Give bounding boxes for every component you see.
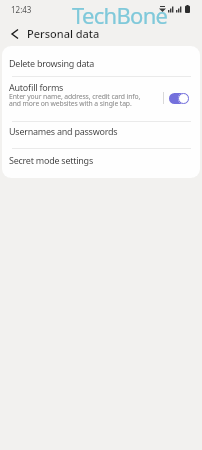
staticText: Delete browsing data bbox=[9, 57, 95, 69]
button[interactable]: Delete browsing data bbox=[2, 46, 200, 76]
staticText: 12:43 bbox=[11, 4, 32, 15]
button[interactable]: Autofill forms bbox=[2, 77, 200, 121]
staticText: Usernames and passwords bbox=[9, 125, 118, 137]
staticText: Autofill forms bbox=[9, 81, 64, 93]
button[interactable]: Personal data bbox=[0, 18, 100, 46]
staticText: TechBone bbox=[72, 0, 168, 30]
staticText: Enter your name, address, credit card in… bbox=[9, 92, 141, 108]
staticText: Secret mode settings bbox=[9, 154, 93, 166]
button[interactable] bbox=[169, 93, 189, 104]
staticText: Personal data bbox=[27, 26, 100, 41]
button[interactable]: Usernames and passwords bbox=[2, 122, 200, 148]
button[interactable]: Secret mode settings bbox=[2, 149, 200, 178]
